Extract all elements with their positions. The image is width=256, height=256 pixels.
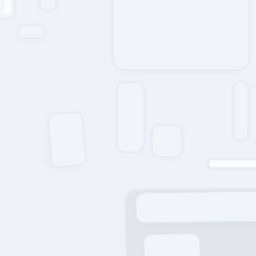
button[interactable]: Tilted card [0,0,256,256]
button[interactable]: Pill button [0,0,256,256]
button[interactable]: Featured card [0,0,256,256]
button[interactable]: Tall card [0,0,256,256]
button[interactable]: Square card [0,0,256,256]
button[interactable]: Side card [0,0,256,256]
